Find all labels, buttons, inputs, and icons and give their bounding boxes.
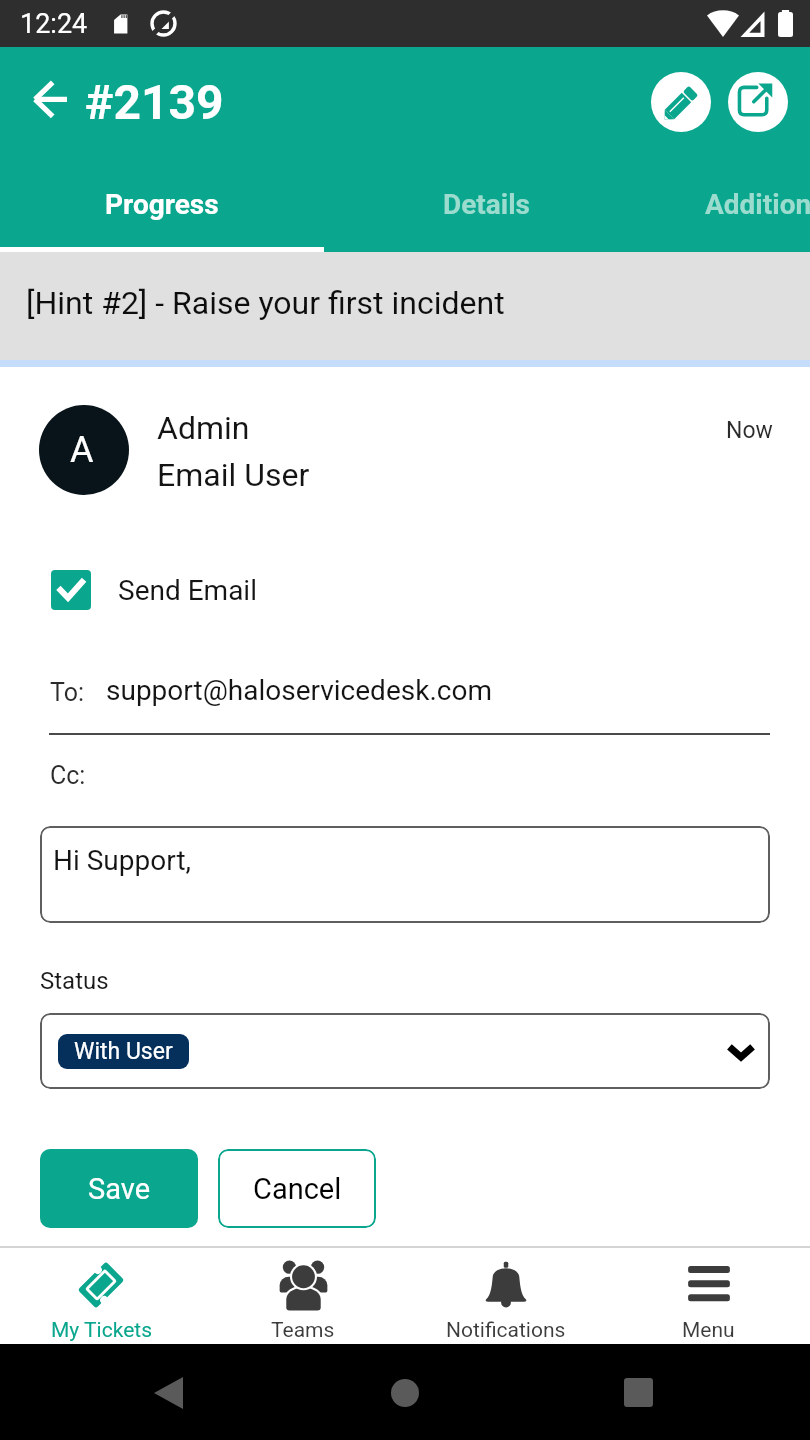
staticText: Additional (705, 188, 810, 221)
staticText: 12:24 (20, 8, 88, 40)
button[interactable]: [Hint #2] - Raise your first incident (0, 252, 810, 360)
staticText: Menu (682, 1318, 735, 1343)
staticText: Hi Support, (53, 844, 192, 877)
staticText: Details (443, 188, 530, 221)
staticText: My Tickets (51, 1318, 152, 1343)
staticText: Teams (271, 1318, 335, 1343)
button[interactable]: Hi Support, (40, 826, 770, 923)
button[interactable]: Home (391, 1379, 419, 1407)
button[interactable]: Recent apps (624, 1378, 653, 1407)
staticText: With User (74, 1038, 173, 1065)
button[interactable]: With User (40, 1013, 770, 1089)
button[interactable]: Menu (607, 1248, 810, 1344)
staticText: Cc: (50, 761, 86, 790)
button[interactable]: Details (324, 157, 648, 252)
button[interactable]: Back (26, 78, 74, 126)
staticText: Save (88, 1172, 151, 1206)
button[interactable]: My Tickets (0, 1248, 202, 1344)
staticText: Notifications (446, 1318, 566, 1343)
button[interactable]: Open in new window (728, 72, 788, 132)
staticText: Now (726, 417, 773, 444)
staticText: #2139 (85, 74, 224, 130)
button[interactable]: Cancel (218, 1149, 376, 1228)
staticText: Cancel (253, 1172, 342, 1206)
staticText: To: (50, 678, 85, 707)
staticText: A (70, 429, 94, 471)
button[interactable]: Notifications (404, 1248, 607, 1344)
staticText: [Hint #2] - Raise your first incident (26, 284, 505, 322)
staticText: Status (40, 967, 109, 995)
button[interactable]: Send Email (51, 570, 257, 610)
staticText: Email User (157, 456, 310, 494)
button[interactable]: Teams (202, 1248, 404, 1344)
button[interactable]: Edit (651, 72, 711, 132)
button[interactable]: Additional (607, 157, 810, 252)
staticText: Progress (105, 188, 219, 221)
staticText: Send Email (118, 574, 257, 607)
staticText: support@haloservicedesk.com (106, 674, 492, 707)
staticText: Admin (157, 409, 250, 447)
button[interactable]: Progress (0, 157, 324, 252)
button[interactable]: Back (154, 1377, 183, 1409)
button[interactable]: Save (40, 1149, 198, 1228)
